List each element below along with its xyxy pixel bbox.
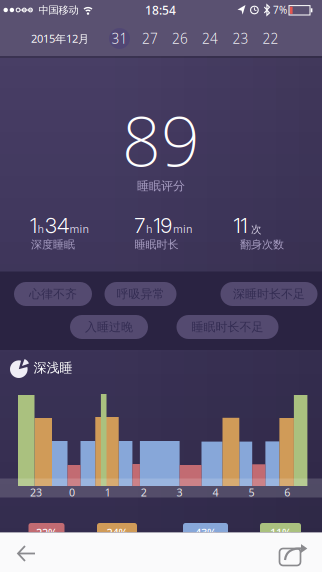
staticText: 翻身次数 — [240, 238, 284, 251]
staticText: 43% — [195, 525, 216, 540]
staticText: 0 — [69, 485, 75, 499]
staticText: 次 — [248, 223, 262, 236]
staticText: 27 — [142, 29, 158, 48]
button[interactable]: 26 — [168, 26, 192, 50]
staticText: 深睡时长不足 — [233, 287, 305, 301]
staticText: 入睡过晚 — [85, 320, 133, 334]
staticText: 2015年12月 — [31, 31, 89, 46]
staticText: 24 — [202, 29, 218, 48]
button[interactable]: 23 — [228, 26, 252, 50]
button[interactable]: 22 — [258, 26, 282, 50]
staticText: 睡眠时长 — [134, 238, 178, 251]
staticText: min — [173, 222, 193, 236]
button[interactable]: 24 — [198, 26, 222, 50]
staticText: min — [69, 222, 89, 236]
staticText: 1 — [30, 213, 37, 238]
staticText: 23 — [232, 29, 248, 48]
staticText: 18:54 — [145, 2, 176, 18]
staticText: 7 — [134, 213, 145, 238]
staticText: 3 — [177, 485, 183, 499]
staticText: 22% — [36, 525, 57, 540]
staticText: 19 — [153, 213, 172, 238]
button[interactable]: Share — [279, 543, 308, 565]
staticText: 23 — [30, 485, 42, 499]
staticText: 4 — [212, 485, 218, 499]
staticText: 1 — [105, 485, 111, 499]
staticText: 深浅睡 — [33, 360, 72, 376]
staticText: 26 — [172, 29, 188, 48]
staticText: h — [37, 222, 44, 236]
staticText: 22 — [262, 29, 278, 48]
staticText: 2 — [141, 485, 147, 499]
button[interactable]: 27 — [138, 26, 162, 50]
staticText: 7% — [273, 3, 287, 16]
staticText: 中国移动 — [38, 4, 78, 16]
staticText: 31 — [111, 29, 127, 48]
staticText: 24% — [106, 525, 127, 540]
staticText: 11 — [233, 213, 247, 238]
staticText: 呼吸异常 — [116, 287, 164, 301]
staticText: 睡眠评分 — [137, 179, 185, 193]
button[interactable]: Back — [14, 545, 38, 562]
staticText: 34 — [45, 213, 69, 238]
staticText: 睡眠时长不足 — [191, 320, 263, 334]
staticText: h — [146, 222, 153, 236]
staticText: 5 — [248, 485, 254, 499]
staticText: 89 — [122, 95, 200, 185]
staticText: 心律不齐 — [29, 287, 77, 301]
staticText: 11% — [270, 525, 291, 540]
button[interactable]: 31 — [107, 26, 131, 50]
staticText: 6 — [284, 485, 290, 499]
staticText: 深度睡眠 — [31, 238, 75, 251]
